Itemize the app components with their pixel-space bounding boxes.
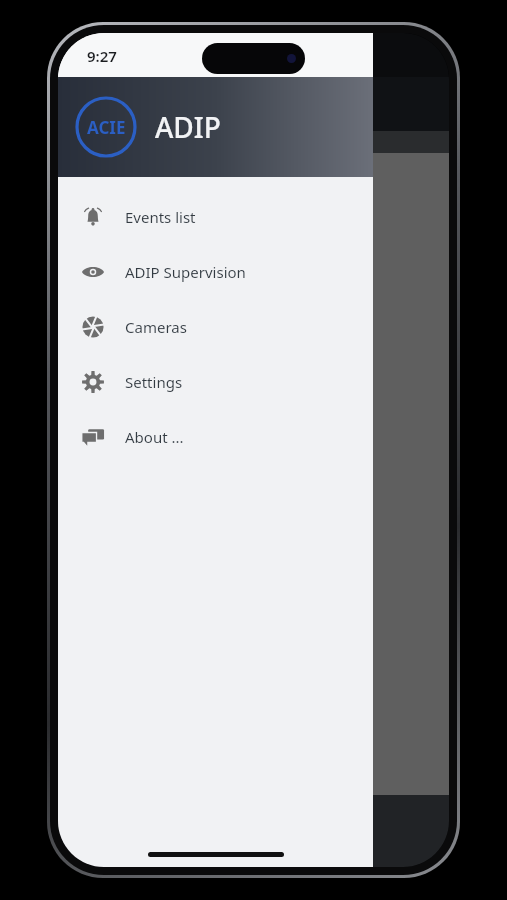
staticText: Events list [125,207,196,227]
staticText: ADIP [155,108,221,146]
staticText: ADIP Supervision [125,262,246,282]
staticText: Cameras [125,317,187,337]
staticText: Settings [125,372,183,392]
button[interactable]: Settings [58,354,373,409]
button[interactable]: Cameras [58,795,449,867]
staticText: 9:27 [87,46,117,66]
button[interactable]: Cameras [58,299,373,354]
staticText: About ... [125,427,184,447]
button[interactable]: About ... [58,409,373,464]
staticText: ACIE [87,116,126,139]
staticText: Cameras [231,839,277,854]
button[interactable]: ADIP Supervision [58,244,373,299]
button[interactable]: Events list [58,189,373,244]
